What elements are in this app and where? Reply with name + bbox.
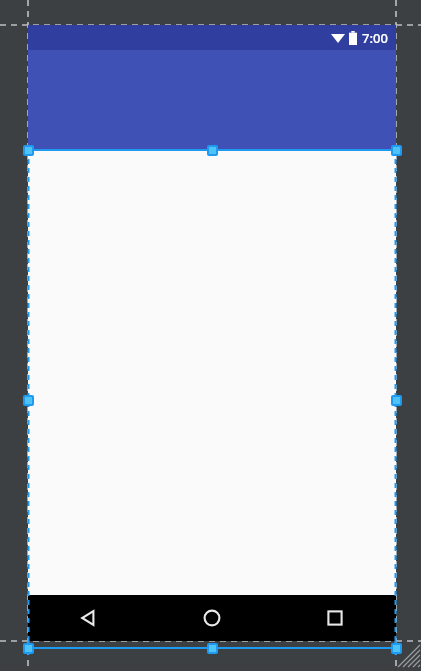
- button[interactable]: Home: [150, 595, 273, 641]
- button[interactable]: Back: [28, 595, 150, 641]
- staticText: 7:00: [362, 29, 388, 47]
- button[interactable]: [28, 50, 396, 150]
- button[interactable]: Recent apps: [273, 595, 396, 641]
